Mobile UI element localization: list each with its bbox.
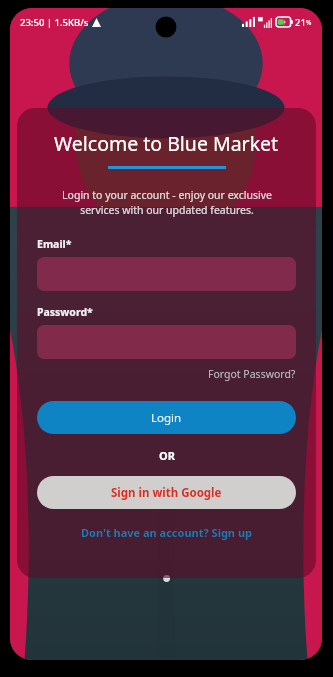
button[interactable]: Login [37,401,296,434]
staticText: Login [151,410,182,426]
button[interactable]: Sign in with Google [37,476,296,509]
staticText: % [306,18,312,27]
staticText: Password* [37,305,93,319]
staticText: OR [159,448,175,463]
staticText: Login to your account - enjoy our exclus… [62,188,272,217]
staticText: Don't have an account? Sign up [81,525,252,540]
staticText: Welcome to Blue Market [54,130,279,157]
button[interactable]: Forgot Password? [37,367,296,381]
button[interactable] [37,325,296,359]
staticText: 23:50 | 1.5KB/s [20,16,89,29]
staticText: Email* [37,237,72,251]
staticText: Forgot Password? [208,367,296,381]
staticText: 21 [295,16,306,29]
staticText: Sign in with Google [111,485,222,501]
button[interactable]: Don't have an account? Sign up [37,525,296,540]
button[interactable] [37,257,296,291]
